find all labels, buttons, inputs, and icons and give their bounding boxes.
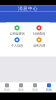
button[interactable]: 业务办理: [28, 36, 50, 48]
staticText: 首页: [4, 88, 10, 92]
button[interactable]: 消息: [28, 82, 42, 93]
staticText: 个人信息: [11, 44, 23, 48]
staticText: 消息中心: [18, 6, 38, 11]
staticText: 社保查询: [33, 32, 45, 36]
button[interactable]: 我的: [42, 82, 56, 93]
staticText: 我的: [46, 88, 52, 92]
staticText: 服务: [18, 88, 24, 92]
button[interactable]: 服务: [14, 82, 28, 93]
staticText: 公积金查询: [9, 32, 24, 36]
button[interactable]: 社保查询: [28, 24, 50, 36]
button[interactable]: 首页: [0, 82, 14, 93]
staticText: 业务办理: [33, 44, 45, 48]
button[interactable]: 个人信息: [6, 36, 28, 48]
button[interactable]: 公积金查询: [6, 24, 28, 36]
staticText: 消息: [32, 88, 38, 92]
